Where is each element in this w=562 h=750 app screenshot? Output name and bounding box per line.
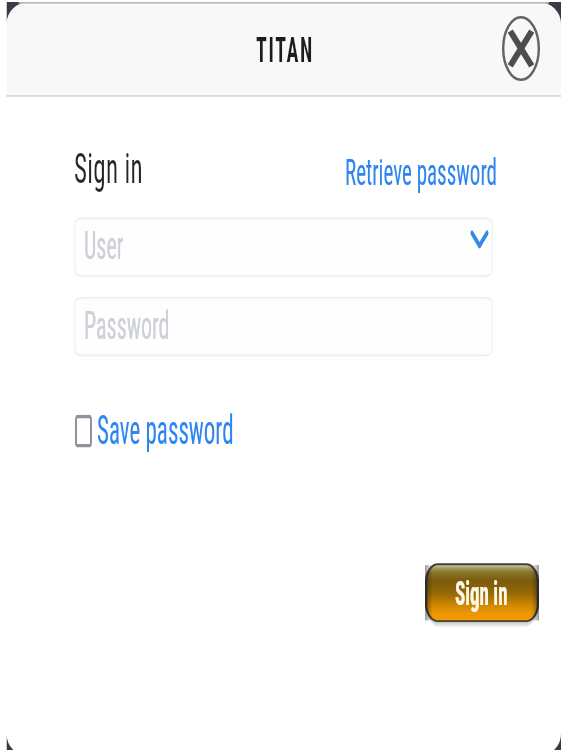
staticText: Sign in <box>455 574 508 612</box>
staticText: Save password <box>97 408 234 454</box>
staticText: Retrieve password <box>345 152 498 195</box>
button[interactable]: Sign in <box>425 563 539 622</box>
staticText: User <box>84 225 124 270</box>
button[interactable]: Save password <box>75 408 234 454</box>
button[interactable]: Retrieve password <box>342 150 495 193</box>
staticText: Password <box>84 304 170 349</box>
button[interactable]: User <box>74 218 493 276</box>
button[interactable]: Password <box>74 297 493 356</box>
staticText: Sign in <box>74 143 143 193</box>
staticText: TITAN <box>256 29 314 69</box>
button[interactable]: Close <box>495 10 546 87</box>
